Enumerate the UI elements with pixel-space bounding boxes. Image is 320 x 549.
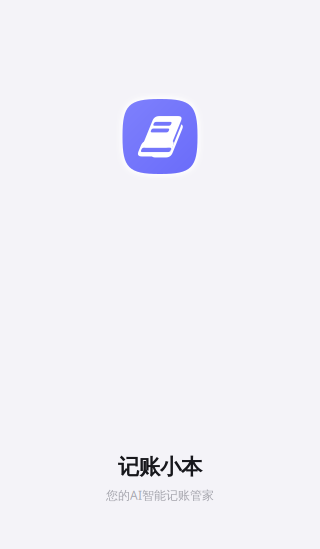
staticText: 您的AI智能记账管家 — [106, 487, 214, 503]
staticText: 记账小本 — [118, 454, 202, 480]
